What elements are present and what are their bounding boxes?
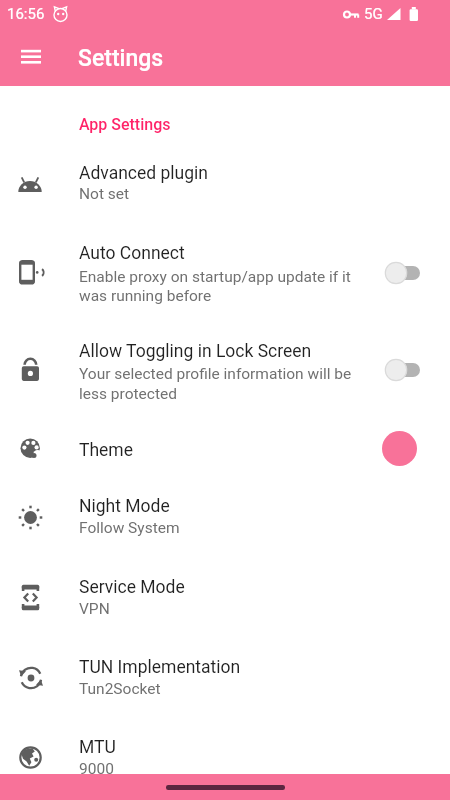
staticText: 16:56 xyxy=(7,5,45,23)
staticText: Theme xyxy=(79,440,133,461)
button[interactable] xyxy=(382,431,417,466)
staticText: VPN xyxy=(79,600,110,618)
staticText: TUN Implementation xyxy=(79,657,241,678)
staticText: Tun2Socket xyxy=(79,680,161,698)
button[interactable] xyxy=(390,266,420,280)
button[interactable] xyxy=(390,363,420,377)
staticText: Your selected profile information will b… xyxy=(79,365,352,383)
staticText: 5G xyxy=(364,5,383,23)
staticText: Night Mode xyxy=(79,496,170,517)
button[interactable] xyxy=(0,420,450,478)
button[interactable] xyxy=(0,482,450,556)
button[interactable] xyxy=(0,722,450,774)
staticText: MTU xyxy=(79,737,116,758)
staticText: less protected xyxy=(79,385,177,403)
staticText: Advanced plugin xyxy=(79,163,208,184)
button[interactable] xyxy=(0,326,450,416)
button[interactable] xyxy=(0,228,450,318)
staticText: Service Mode xyxy=(79,577,185,598)
staticText: Follow System xyxy=(79,519,180,537)
staticText: Allow Toggling in Lock Screen xyxy=(79,341,312,362)
staticText: Not set xyxy=(79,185,130,203)
button[interactable] xyxy=(0,562,450,636)
staticText: 9000 xyxy=(79,760,114,778)
staticText: App Settings xyxy=(79,115,171,134)
button[interactable] xyxy=(0,642,450,716)
staticText: Auto Connect xyxy=(79,243,185,264)
staticText: Enable proxy on startup/app update if it xyxy=(79,268,351,286)
staticText: was running before xyxy=(79,287,212,305)
button[interactable] xyxy=(21,49,41,65)
button[interactable] xyxy=(0,148,450,220)
staticText: Settings xyxy=(78,45,164,72)
